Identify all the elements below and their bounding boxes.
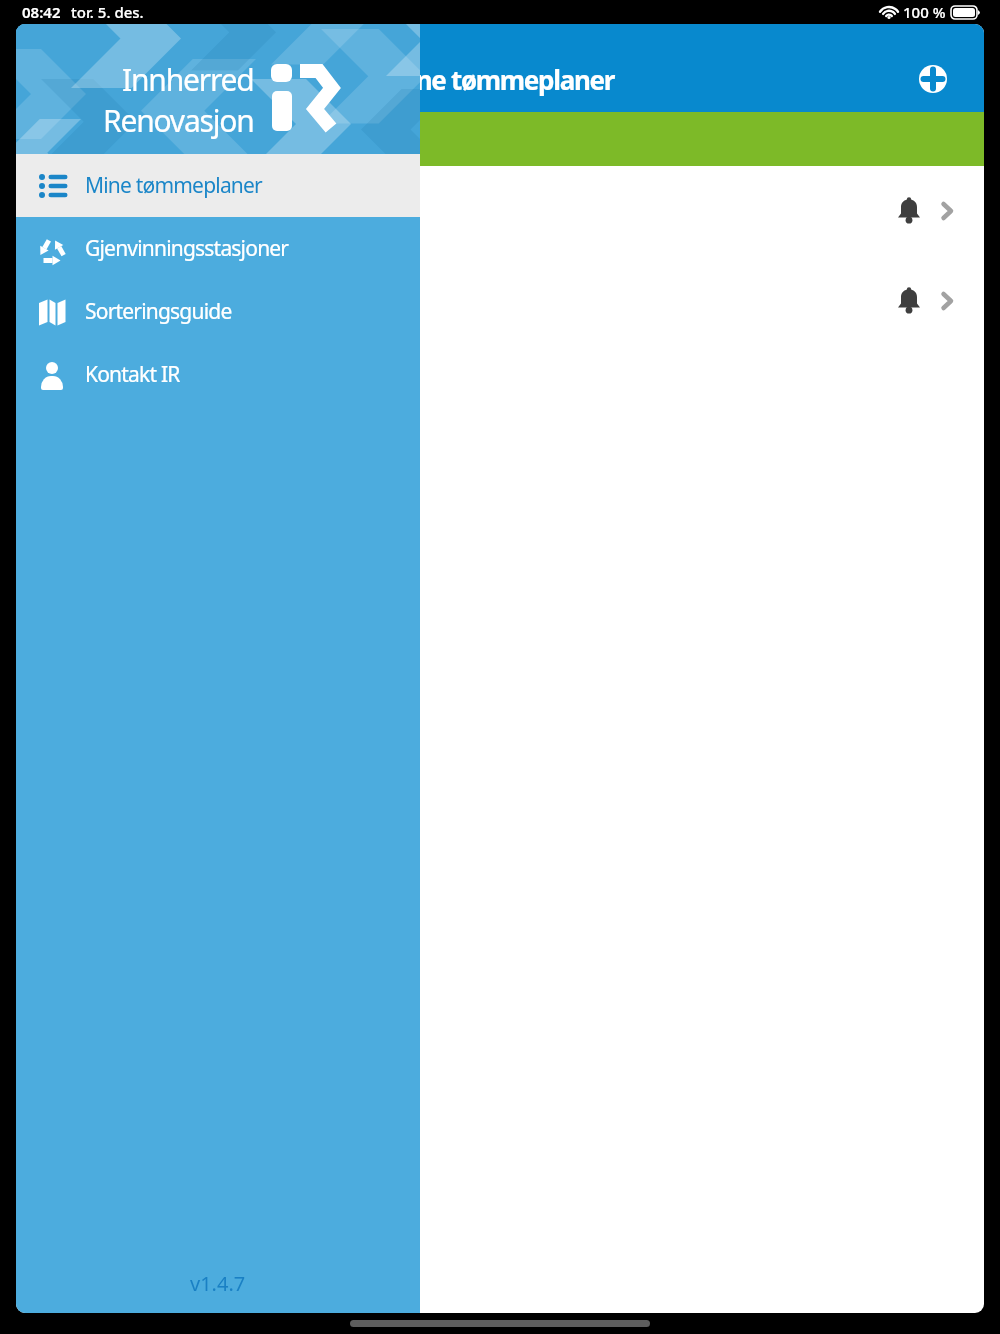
button[interactable] bbox=[16, 112, 984, 166]
button[interactable]: Gjenvinningsstasjoner bbox=[16, 217, 420, 280]
button[interactable]: Kontakt IR bbox=[16, 343, 420, 406]
staticText: Innherred bbox=[122, 59, 254, 100]
staticText: tor. 5. des. bbox=[71, 2, 144, 22]
staticText: Kontakt IR bbox=[85, 360, 180, 389]
staticText: Gjenvinningsstasjoner bbox=[85, 234, 289, 263]
staticText: Renovasjon bbox=[103, 100, 254, 141]
button[interactable]: v1.4.7 bbox=[190, 1270, 246, 1297]
staticText: Mine tømmeplaner bbox=[85, 171, 262, 200]
button[interactable] bbox=[16, 256, 984, 346]
button[interactable] bbox=[919, 65, 947, 93]
staticText: 100 % bbox=[903, 2, 946, 22]
staticText: v1.4.7 bbox=[190, 1270, 246, 1297]
button[interactable] bbox=[16, 166, 984, 256]
staticText: 08:42 bbox=[22, 2, 61, 22]
button[interactable]: Mine tømmeplaner bbox=[16, 154, 420, 217]
button[interactable]: Sorteringsguide bbox=[16, 280, 420, 343]
staticText: Mine tømmeplaner bbox=[386, 62, 615, 97]
staticText: Sorteringsguide bbox=[85, 297, 232, 326]
